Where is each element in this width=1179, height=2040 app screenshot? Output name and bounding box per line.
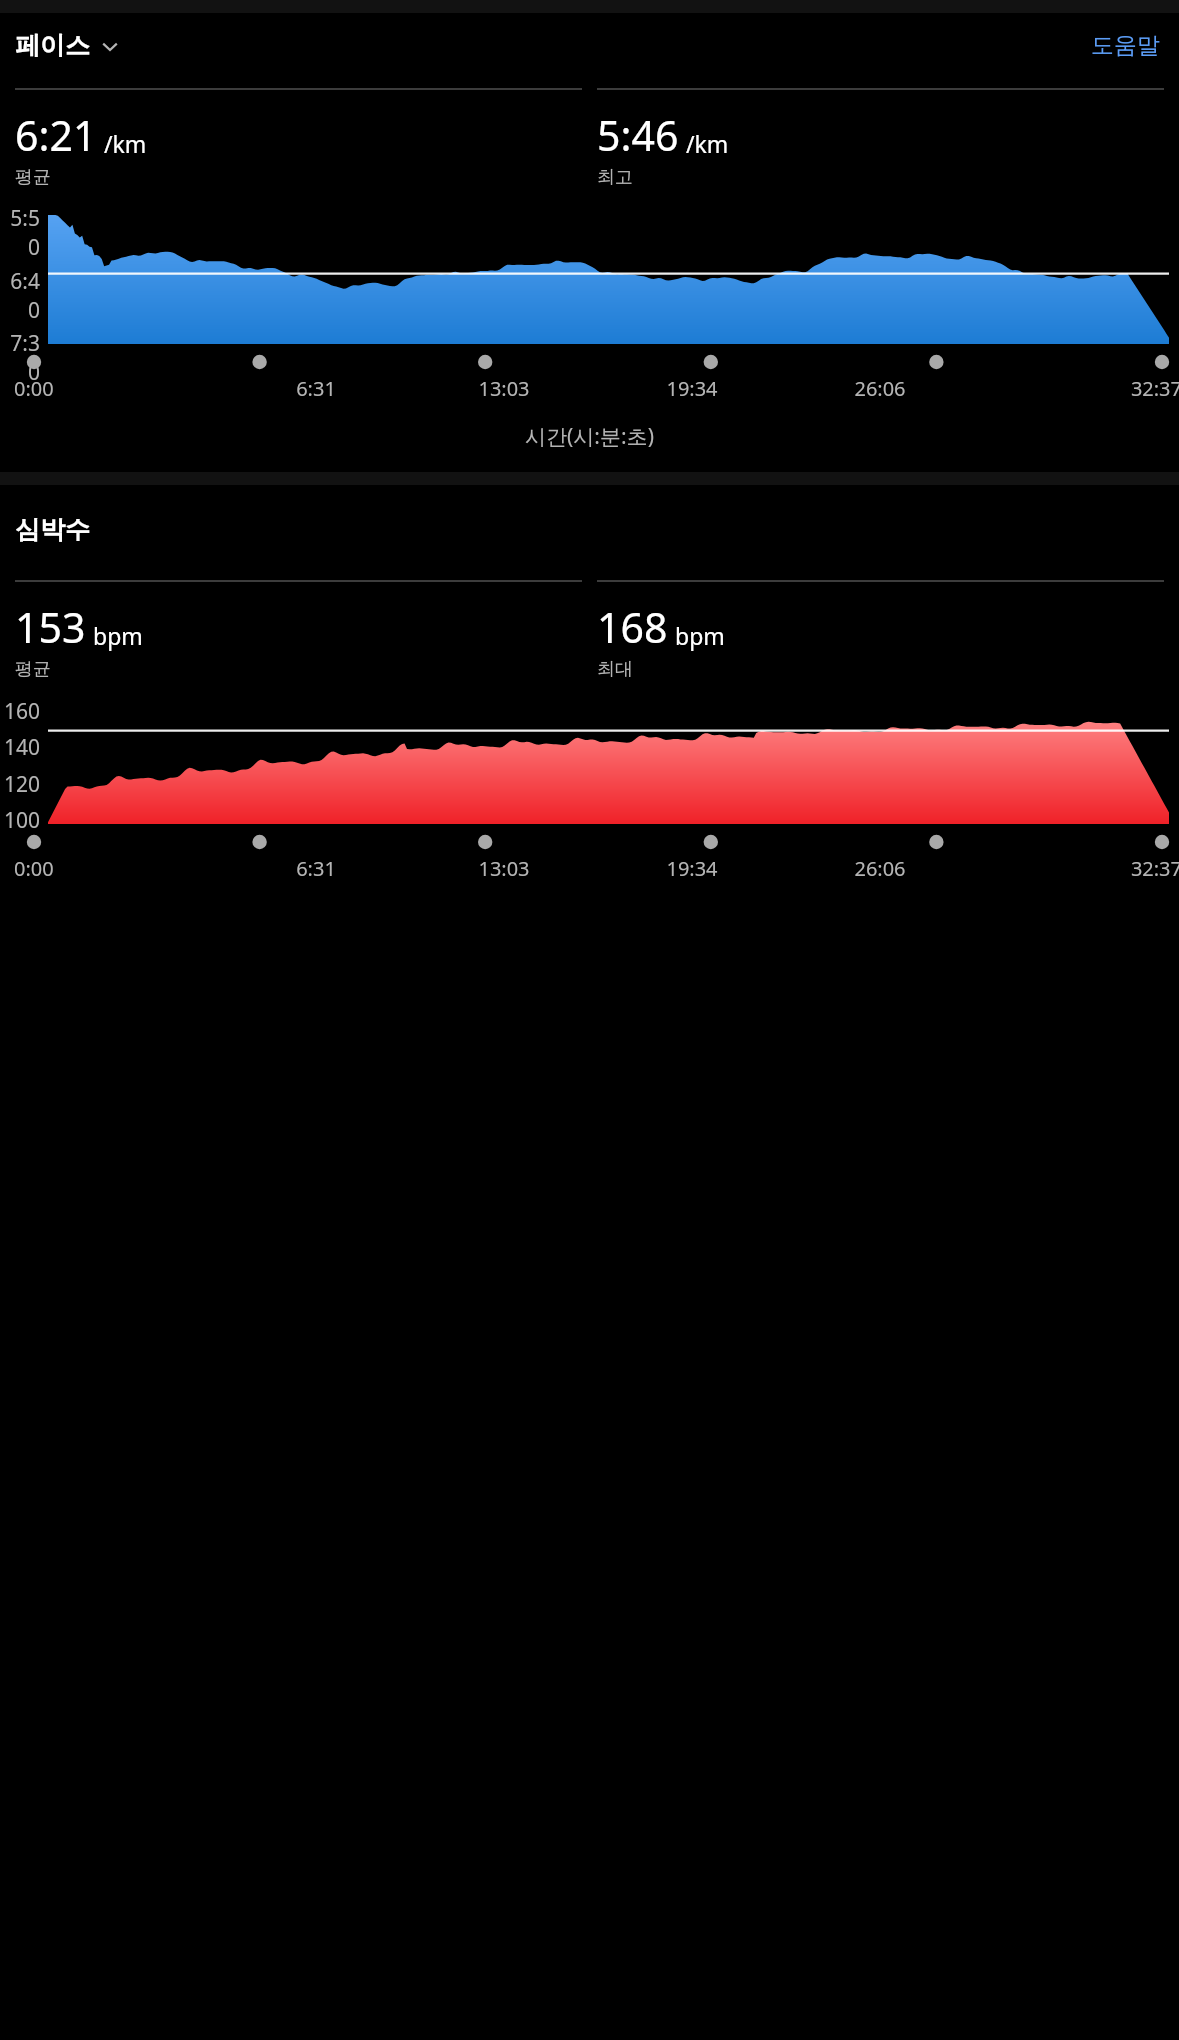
staticText: 6:31 [222,375,410,402]
staticText: 160 [3,697,40,726]
staticText: /km [104,128,147,159]
staticText: 7:30 [0,329,40,387]
staticText: 5:50 [0,204,40,262]
staticText: 168 [597,599,668,655]
staticText: 6:40 [0,267,40,325]
staticText: 최대 [597,658,633,681]
staticText: 26:06 [786,855,974,882]
staticText: 153 [15,599,86,655]
staticText: 0:00 [14,855,202,882]
staticText: 심박수 [15,514,90,545]
button[interactable]: 페이스 [15,24,120,67]
staticText: 19:34 [598,375,786,402]
staticText: 13:03 [410,375,598,402]
staticText: 시간(시:분:초) [0,422,1179,451]
staticText: 32:37 [994,855,1179,882]
staticText: 0:00 [14,375,202,402]
staticText: 6:21 [15,107,97,163]
button[interactable]: 심박수 [0,510,1179,549]
staticText: bpm [675,620,725,651]
staticText: 26:06 [786,375,974,402]
staticText: 32:37 [994,375,1179,402]
staticText: 120 [3,770,40,799]
staticText: /km [686,128,729,159]
staticText: bpm [93,620,143,651]
staticText: 평균 [15,166,51,189]
other: Expand metric selector [100,36,120,56]
staticText: 페이스 [15,30,90,61]
staticText: 6:31 [222,855,410,882]
staticText: 100 [3,806,40,835]
staticText: 5:46 [597,107,679,163]
staticText: 13:03 [410,855,598,882]
staticText: 140 [3,733,40,762]
staticText: 도움말 [1091,31,1160,60]
staticText: 최고 [597,166,633,189]
staticText: 평균 [15,658,51,681]
button[interactable]: 도움말 [1087,25,1164,66]
staticText: 19:34 [598,855,786,882]
